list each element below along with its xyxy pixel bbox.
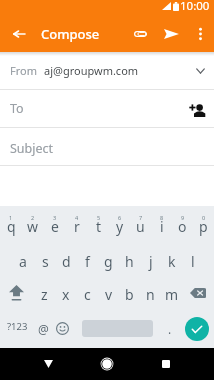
staticText: 9 [181,214,185,221]
button[interactable]: From [0,52,214,90]
staticText: e [51,217,59,236]
button[interactable]: c [77,275,98,309]
button[interactable]: m [161,275,182,309]
button[interactable]: Enter [176,309,214,348]
staticText: . [168,321,172,337]
button[interactable]: b [119,275,140,309]
button[interactable]: Emoji [52,309,72,348]
button[interactable]: s [34,241,56,275]
button[interactable]: 3 [44,206,66,241]
staticText: d [62,252,71,271]
button[interactable]: 1 [0,206,22,241]
button[interactable] [72,309,163,348]
staticText: 3 [53,214,57,221]
staticText: 7 [139,214,143,221]
staticText: Compose [41,25,100,43]
staticText: Subject [10,140,54,157]
staticText: z [41,285,48,304]
staticText: 8 [160,214,164,221]
button[interactable]: 8 [151,206,172,241]
staticText: r [74,217,80,236]
button[interactable]: v [98,275,119,309]
staticText: m [165,285,179,304]
button[interactable]: More options [187,21,213,47]
staticText: f [85,252,90,271]
button[interactable]: Recent apps [151,349,181,379]
staticText: u [136,217,145,236]
staticText: b [125,285,134,304]
staticText: j [149,252,153,271]
button[interactable]: Add recipient [184,96,210,122]
button[interactable]: Subject [0,128,214,166]
staticText: From [10,63,37,78]
button[interactable]: Shift [0,275,33,309]
staticText: t [96,217,102,236]
staticText: g [104,252,113,271]
staticText: h [125,252,134,271]
staticText: l [191,252,195,271]
button[interactable]: 4 [66,206,88,241]
button[interactable]: z [33,275,55,309]
staticText: n [146,285,155,304]
staticText: y [116,217,124,236]
staticText: q [7,217,16,236]
staticText: p [199,217,208,236]
button[interactable]: f [77,241,98,275]
staticText: i [160,217,164,236]
staticText: x [62,285,70,304]
button[interactable]: Attach file [125,19,155,49]
button[interactable]: Hide keyboard [33,349,63,379]
button[interactable]: . [163,309,176,348]
button[interactable]: 2 [22,206,44,241]
staticText: o [178,217,187,236]
staticText: v [105,285,113,304]
button[interactable]: @ [34,309,52,348]
button[interactable]: ?123 [0,309,34,348]
staticText: c [84,285,91,304]
staticText: @ [38,321,49,337]
staticText: 6 [118,214,122,221]
staticText: aj@groupwm.com [44,63,139,78]
staticText: To [10,100,24,117]
button[interactable]: g [98,241,119,275]
button[interactable]: Send [156,19,186,49]
button[interactable]: j [140,241,161,275]
button[interactable]: To [0,90,214,128]
staticText: ?123 [7,320,28,333]
button[interactable]: 7 [130,206,151,241]
button[interactable]: 0 [193,206,214,241]
button[interactable]: Backspace [182,275,214,309]
staticText: 2 [31,214,35,221]
staticText: w [27,217,39,236]
button[interactable]: l [182,241,203,275]
button[interactable]: Expand sender [188,59,212,83]
button[interactable]: x [55,275,77,309]
staticText: a [19,252,27,271]
button[interactable]: k [161,241,182,275]
staticText: 10:00 [180,0,210,14]
button[interactable]: 9 [172,206,193,241]
button[interactable]: n [140,275,161,309]
staticText: s [42,252,49,271]
button[interactable]: 6 [109,206,130,241]
staticText: 1 [9,214,13,221]
staticText: k [168,252,176,271]
button[interactable]: d [56,241,77,275]
button[interactable]: 5 [88,206,109,241]
staticText: 0 [202,214,206,221]
button[interactable]: a [12,241,34,275]
button[interactable]: Back [0,16,38,52]
button[interactable]: h [119,241,140,275]
staticText: 5 [97,214,101,221]
button[interactable]: Home [92,349,122,379]
staticText: 4 [75,214,79,221]
